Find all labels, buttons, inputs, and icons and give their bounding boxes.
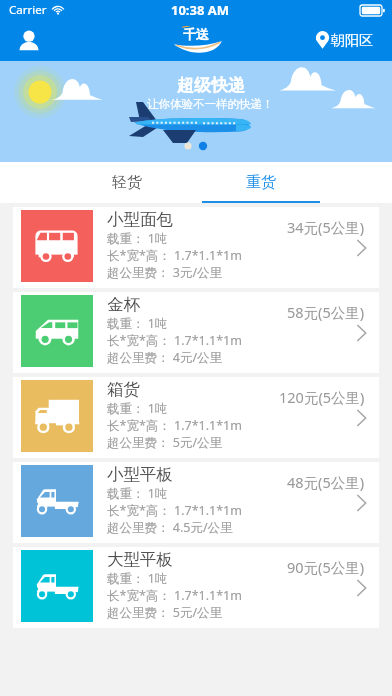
staticText: 小型平板	[107, 464, 173, 485]
staticText: 箱货	[107, 379, 140, 400]
staticText: 超公里费： 3元/公里	[107, 264, 223, 281]
staticText: 58元(5公里)	[287, 302, 365, 322]
staticText: 超公里费： 5元/公里	[107, 434, 223, 451]
staticText: 载重： 1吨	[107, 400, 168, 417]
button[interactable]: 箱货	[13, 377, 379, 458]
staticText: 超公里费： 5元/公里	[107, 604, 223, 621]
staticText: 10:38 AM	[171, 1, 230, 19]
staticText: 120元(5公里)	[279, 387, 365, 407]
staticText: 轻货	[112, 173, 142, 192]
staticText: 48元(5公里)	[287, 472, 365, 492]
staticText: Carrier	[9, 2, 47, 18]
button[interactable]: 大型平板	[13, 547, 379, 628]
button[interactable]: 金杯	[13, 292, 379, 373]
button[interactable]: 朝阳区	[315, 31, 373, 50]
staticText: 金杯	[107, 294, 140, 315]
staticText: 长*宽*高： 1.7*1.1*1m	[107, 587, 242, 604]
button[interactable]: Profile	[17, 29, 41, 53]
staticText: 长*宽*高： 1.7*1.1*1m	[107, 247, 242, 264]
staticText: 载重： 1吨	[107, 230, 168, 247]
staticText: 小型面包	[107, 209, 173, 230]
button[interactable]: 小型面包	[13, 207, 379, 288]
staticText: 千送	[183, 26, 209, 42]
button[interactable]: 轻货	[68, 162, 186, 203]
staticText: 让你体验不一样的快递！	[147, 97, 274, 111]
staticText: 超公里费： 4元/公里	[107, 349, 223, 366]
staticText: 载重： 1吨	[107, 315, 168, 332]
staticText: 长*宽*高： 1.7*1.1*1m	[107, 502, 242, 519]
staticText: 大型平板	[107, 549, 173, 570]
staticText: 长*宽*高： 1.7*1.1*1m	[107, 332, 242, 349]
button[interactable]: 小型平板	[13, 462, 379, 543]
staticText: 34元(5公里)	[287, 217, 365, 237]
staticText: 超公里费： 4.5元/公里	[107, 519, 233, 536]
button[interactable]: 超级快递	[0, 61, 392, 162]
staticText: 重货	[246, 173, 276, 192]
staticText: 朝阳区	[331, 32, 373, 50]
staticText: 载重： 1吨	[107, 485, 168, 502]
button[interactable]: 重货	[202, 162, 320, 203]
staticText: 90元(5公里)	[287, 557, 365, 577]
staticText: 载重： 1吨	[107, 570, 168, 587]
staticText: 长*宽*高： 1.7*1.1*1m	[107, 417, 242, 434]
staticText: 超级快递	[177, 75, 245, 96]
